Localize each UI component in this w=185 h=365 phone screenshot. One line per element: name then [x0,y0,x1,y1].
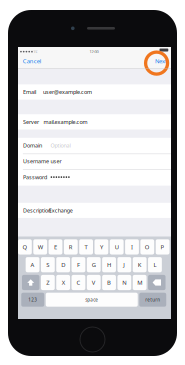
staticText: V [92,278,96,286]
button[interactable]: V [87,275,101,290]
staticText: N [122,278,126,286]
staticText: space [85,297,98,303]
staticText: R [69,243,73,251]
button[interactable]: L [148,257,162,272]
button[interactable]: M [133,275,147,290]
staticText: Y [100,243,103,251]
staticText: user [50,157,61,165]
button[interactable]: C [71,275,85,290]
staticText: C [76,278,80,286]
staticText: B [107,278,111,286]
button[interactable]: X [56,275,70,290]
button[interactable]: Domain [18,138,171,153]
staticText: I [131,243,133,251]
staticText: F [77,261,80,269]
staticText: mail.example.com [43,118,87,126]
staticText: M [137,278,142,286]
button[interactable]: F [72,257,85,272]
button[interactable]: Q [18,239,32,254]
staticText: G [92,261,96,269]
button[interactable]: Cancel [23,53,53,69]
button[interactable]: 123 [21,293,44,307]
staticText: Q [22,243,27,251]
button[interactable]: J [117,257,131,272]
staticText: Password [23,173,47,181]
button[interactable]: Shift [22,275,39,290]
button[interactable]: O [140,239,154,254]
staticText: Domain [23,142,42,149]
button[interactable]: T [79,239,93,254]
button[interactable]: Z [41,275,55,290]
button[interactable]: R [64,239,78,254]
staticText: J [123,261,125,269]
staticText: T [85,243,88,251]
button[interactable]: P [156,239,169,254]
button[interactable]: space [46,293,138,307]
button[interactable]: return [139,293,166,307]
staticText: S [46,261,49,269]
staticText: Next [155,57,167,65]
button[interactable]: U [110,239,124,254]
button[interactable]: Delete [148,275,165,290]
staticText: Optional [50,142,70,149]
button[interactable]: K [133,257,147,272]
button[interactable]: D [56,257,70,272]
button[interactable]: Password [18,170,171,184]
staticText: K [138,261,142,269]
staticText: Username [23,157,49,165]
staticText: Exchange [49,207,73,214]
button[interactable]: I [125,239,139,254]
staticText: user@example.com [43,88,92,96]
staticText: H [107,261,111,269]
button[interactable]: E [49,239,62,254]
staticText: L [153,261,156,269]
button[interactable]: Description [18,203,171,218]
staticText: LTE [32,50,38,55]
staticText: E [54,243,57,251]
staticText: 123 [28,297,37,303]
staticText: A [31,261,35,269]
button[interactable]: Y [94,239,108,254]
button[interactable]: G [87,257,101,272]
staticText: D [61,261,65,269]
button[interactable]: N [117,275,131,290]
staticText: X [62,278,65,286]
button[interactable]: W [33,239,47,254]
staticText: 12:00 [89,49,98,54]
button[interactable]: A [26,257,39,272]
staticText: O [145,243,150,251]
staticText: Email [23,88,36,96]
staticText: Server [23,118,39,126]
button[interactable]: S [41,257,55,272]
staticText: Z [46,278,49,286]
button[interactable]: Email [18,85,171,99]
staticText: P [161,243,165,251]
button[interactable]: Username [18,154,171,169]
staticText: W [38,243,43,251]
button[interactable]: Server [18,114,171,129]
staticText: U [115,243,119,251]
button[interactable]: Next [143,53,167,69]
button[interactable]: H [102,257,116,272]
staticText: return [145,297,160,303]
staticText: Description [23,207,51,214]
button[interactable]: B [102,275,116,290]
staticText: Cancel [23,57,42,65]
